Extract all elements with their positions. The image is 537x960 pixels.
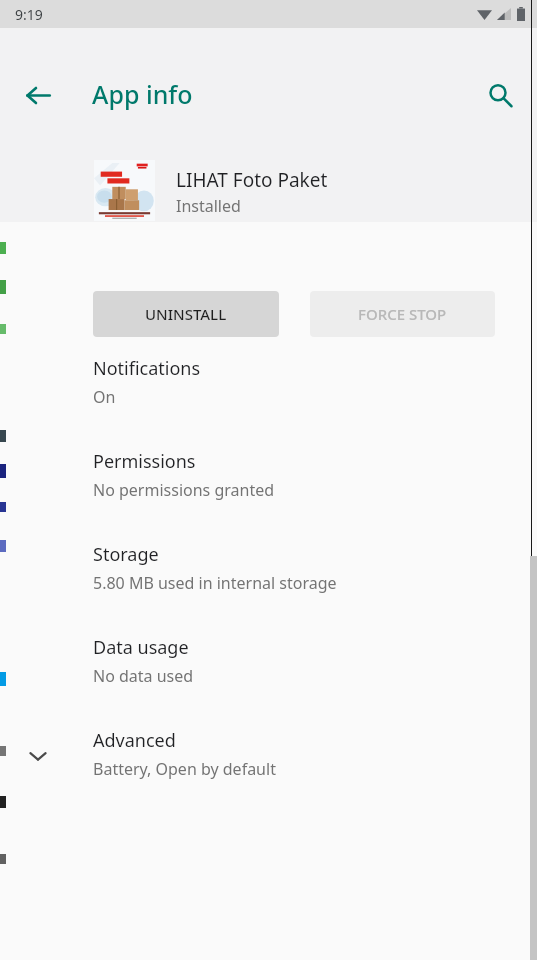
staticText: Notifications [93,356,201,381]
staticText: Storage [93,542,159,567]
button[interactable]: Permissions [0,435,537,528]
staticText: App info [92,77,193,111]
button[interactable]: Advanced [0,714,537,807]
staticText: 5.80 MB used in internal storage [93,572,337,594]
staticText: On [93,386,116,408]
staticText: Installed [176,195,241,217]
staticText: Data usage [93,635,189,660]
button[interactable]: Data usage [0,621,537,714]
button[interactable]: Search [474,69,526,121]
staticText: No permissions granted [93,479,275,501]
staticText: LIHAT Foto Paket [176,167,328,193]
staticText: UNINSTALL [145,304,227,324]
staticText: Advanced [93,728,176,753]
staticText: Battery, Open by default [93,758,276,780]
staticText: No data used [93,665,194,687]
button[interactable]: UNINSTALL [93,291,279,337]
staticText: 9:19 [15,5,43,24]
staticText: Permissions [93,449,196,474]
staticText: FORCE STOP [358,304,447,324]
button[interactable]: FORCE STOP [310,291,495,337]
button[interactable]: Notifications [0,342,537,435]
button[interactable]: Storage [0,528,537,621]
button[interactable]: Back [12,69,64,121]
